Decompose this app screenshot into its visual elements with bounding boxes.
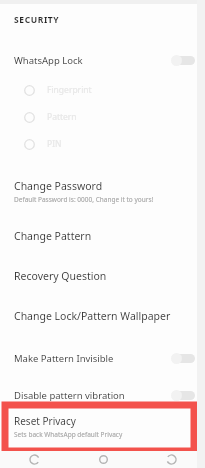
button[interactable]: Fingerprint — [0, 81, 205, 99]
staticText: Recovery Question — [14, 269, 107, 283]
staticText: Change Pattern — [14, 229, 92, 243]
staticText: Make Pattern Invisible — [14, 352, 171, 365]
button[interactable]: Change Password — [0, 176, 205, 207]
staticText: Change Password — [14, 179, 103, 193]
staticText: Fingerprint — [47, 84, 92, 96]
staticText: PIN — [47, 138, 62, 150]
staticText: Sets back WhatsApp default Privacy — [14, 430, 123, 439]
staticText: Reset Privacy — [14, 414, 76, 428]
button[interactable]: Back — [0, 451, 69, 468]
button[interactable]: Home — [69, 451, 137, 468]
button[interactable]: Disable pattern vibration — [0, 385, 205, 405]
button[interactable]: Change Pattern — [0, 226, 205, 246]
button[interactable]: Recovery Question — [0, 266, 205, 286]
button[interactable]: WhatsApp Lock — [0, 50, 205, 70]
button[interactable]: Recent apps — [137, 451, 205, 468]
staticText: SECURITY — [14, 14, 60, 26]
staticText: Pattern — [47, 111, 77, 123]
staticText: Default Password is: 0000, Change it to … — [14, 195, 154, 204]
button[interactable]: Reset Privacy — [5, 405, 194, 451]
button[interactable]: Make Pattern Invisible — [0, 348, 205, 368]
staticText: Change Lock/Pattern Wallpaper — [14, 309, 171, 323]
button[interactable]: Pattern — [0, 108, 205, 126]
staticText: WhatsApp Lock — [14, 54, 171, 67]
button[interactable]: PIN — [0, 135, 205, 153]
button[interactable]: Change Lock/Pattern Wallpaper — [0, 306, 205, 326]
staticText: Disable pattern vibration — [14, 389, 171, 402]
